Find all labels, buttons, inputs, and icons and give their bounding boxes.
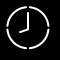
- button[interactable]: Clock: [0, 0, 60, 60]
